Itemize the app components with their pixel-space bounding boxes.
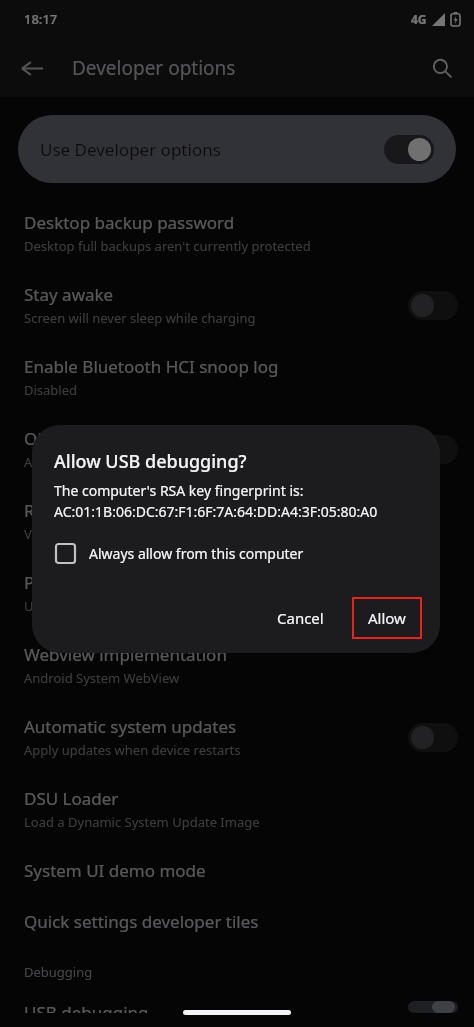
button[interactable]: Cancel bbox=[263, 599, 338, 637]
staticText: Use sRGB bbox=[24, 597, 83, 615]
button[interactable]: Stay awake bbox=[0, 269, 474, 341]
staticText: Allow the bootloader to be unlocked bbox=[24, 453, 246, 471]
staticText: USB debugging bbox=[24, 1001, 149, 1013]
staticText: Load a Dynamic System Update Image bbox=[24, 813, 260, 831]
staticText: Quick settings developer tiles bbox=[24, 910, 259, 933]
button[interactable]: OEM unlocking bbox=[0, 413, 474, 485]
button[interactable]: Toggle on bbox=[384, 135, 434, 164]
button[interactable]: Allow bbox=[354, 599, 420, 637]
staticText: Android System WebView bbox=[24, 669, 180, 687]
staticText: Always allow from this computer bbox=[89, 544, 304, 563]
staticText: Enable Bluetooth HCI snoop log bbox=[24, 355, 279, 378]
button[interactable]: USB debugging bbox=[0, 987, 474, 1027]
staticText: 4G bbox=[411, 11, 427, 27]
staticText: Webview implementation bbox=[24, 643, 227, 666]
staticText: Allow USB debugging? bbox=[54, 449, 247, 474]
staticText: OEM unlocking bbox=[24, 427, 145, 450]
button[interactable]: Toggle off bbox=[408, 291, 458, 320]
staticText: DSU Loader bbox=[24, 787, 119, 810]
staticText: AC:01:1B:06:DC:67:F1:6F:7A:64:DD:A4:3F:0… bbox=[54, 502, 378, 521]
staticText: Debugging bbox=[24, 963, 93, 981]
button[interactable]: Webview implementation bbox=[0, 629, 474, 701]
button[interactable]: Toggle off bbox=[408, 435, 458, 464]
staticText: Cancel bbox=[277, 608, 324, 628]
staticText: Running services bbox=[24, 499, 160, 522]
button[interactable]: Picture color mode bbox=[0, 557, 474, 629]
staticText: Screen will never sleep while charging bbox=[24, 309, 256, 327]
button[interactable]: Automatic system updates bbox=[0, 701, 474, 773]
staticText: Disabled bbox=[24, 381, 78, 399]
staticText: Picture color mode bbox=[24, 571, 175, 594]
button[interactable]: Always allow from this computer bbox=[54, 540, 306, 567]
staticText: Apply updates when device restarts bbox=[24, 741, 241, 759]
staticText: Stay awake bbox=[24, 283, 114, 306]
button[interactable]: Toggle off bbox=[408, 723, 458, 752]
button[interactable]: Quick settings developer tiles bbox=[0, 896, 474, 947]
staticText: Automatic system updates bbox=[24, 715, 237, 738]
button[interactable]: Desktop backup password bbox=[0, 197, 474, 269]
button[interactable]: Running services bbox=[0, 485, 474, 557]
staticText: Desktop backup password bbox=[24, 211, 235, 234]
staticText: Allow bbox=[368, 608, 406, 628]
button[interactable]: DSU Loader bbox=[0, 773, 474, 845]
button[interactable]: Use Developer options bbox=[18, 115, 456, 183]
button[interactable]: System UI demo mode bbox=[0, 845, 474, 896]
staticText: Use Developer options bbox=[40, 138, 384, 161]
staticText: Desktop full backups aren't currently pr… bbox=[24, 237, 311, 255]
staticText: The computer's RSA key fingerprint is: bbox=[54, 481, 304, 500]
button[interactable]: Toggle on bbox=[408, 1001, 458, 1013]
staticText: Developer options bbox=[72, 55, 236, 81]
button[interactable]: Enable Bluetooth HCI snoop log bbox=[0, 341, 474, 413]
button[interactable]: Back bbox=[10, 46, 54, 90]
staticText: View and control currently running servi… bbox=[24, 525, 289, 543]
staticText: System UI demo mode bbox=[24, 859, 206, 882]
staticText: 18:17 bbox=[24, 10, 58, 28]
button[interactable]: Search bbox=[420, 46, 464, 90]
